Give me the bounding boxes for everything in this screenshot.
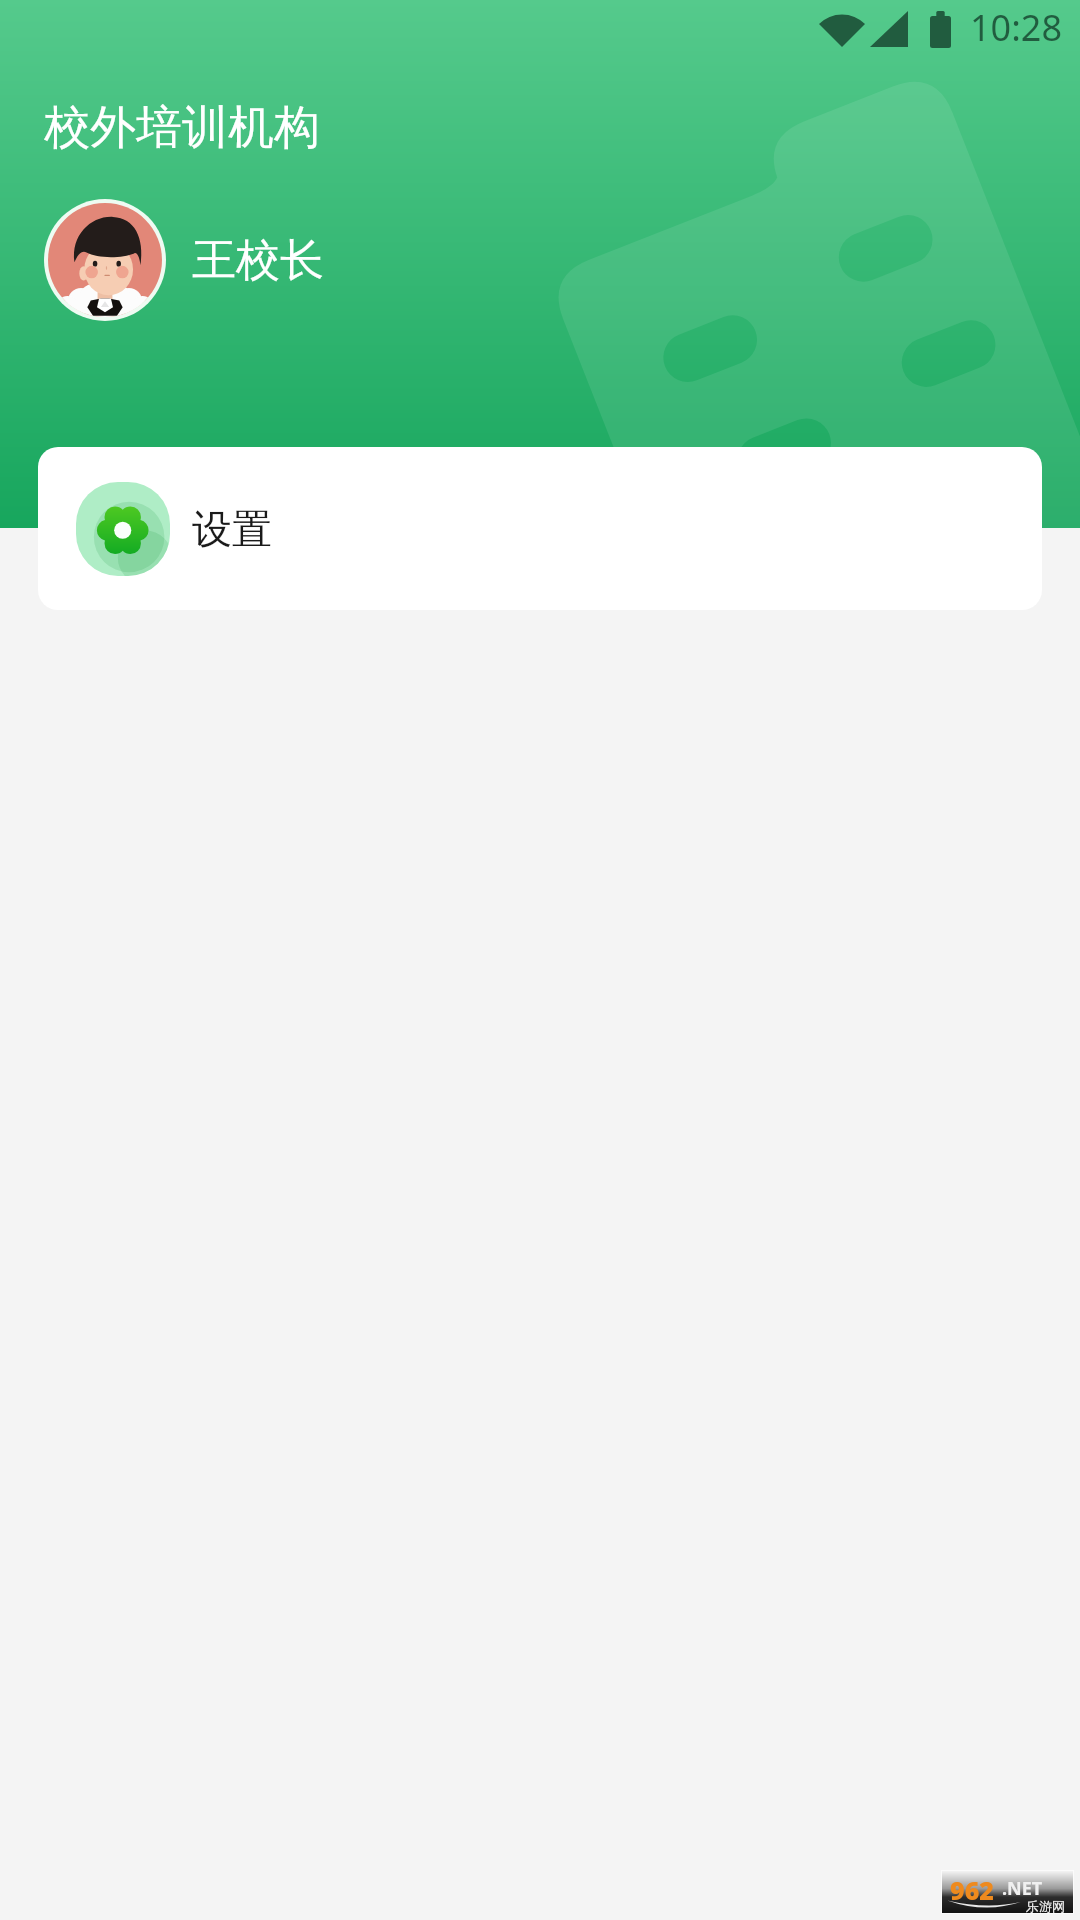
staticText: .NET [1002,1876,1043,1901]
staticText: 设置 [192,504,272,554]
staticText: 校外培训机构 [44,99,320,157]
other: 用户头像 [44,199,166,321]
button[interactable]: 用户头像 [44,199,344,321]
button[interactable]: 设置 [38,447,1042,610]
staticText: 乐游网 [1026,1898,1065,1914]
staticText: 10:28 [970,3,1063,52]
staticText: 王校长 [192,233,324,288]
staticText: 962 [950,1873,994,1907]
